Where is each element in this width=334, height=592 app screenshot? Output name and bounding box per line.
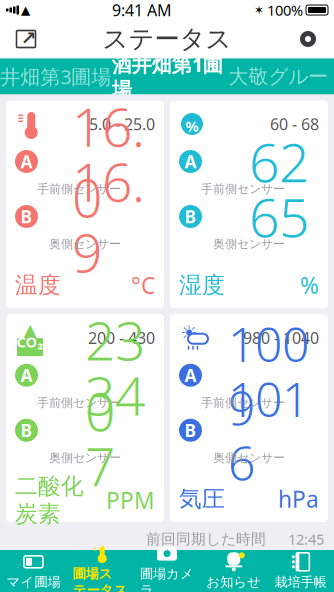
staticText: 温度	[15, 271, 61, 299]
staticText: 手前側センサー	[201, 182, 285, 196]
button[interactable]: 圃場カメラ	[134, 550, 200, 592]
staticText: 手前側センサー	[201, 395, 285, 410]
staticText: %	[185, 116, 198, 136]
staticText: 980 - 1040	[243, 327, 319, 348]
staticText: 奥側センサー	[49, 450, 121, 465]
staticText: %	[300, 270, 319, 300]
staticText: 栽培手帳	[275, 574, 327, 590]
staticText: お知らせ	[206, 574, 261, 590]
staticText: ↗	[20, 27, 36, 49]
button[interactable]: マイ圃場	[0, 550, 67, 592]
staticText: 二酸化炭素	[15, 472, 84, 528]
staticText: ▲	[185, 109, 199, 131]
staticText: B	[184, 419, 196, 442]
staticText: 62	[249, 126, 309, 197]
button[interactable]: 設定	[286, 20, 330, 58]
staticText: A	[184, 150, 196, 173]
staticText: °C	[131, 270, 155, 300]
staticText: 手前側センサー	[37, 395, 121, 410]
staticText: 100%	[267, 0, 303, 20]
staticText: 気圧	[179, 485, 225, 513]
staticText: 65	[249, 181, 309, 252]
staticText: 1016	[228, 366, 309, 494]
staticText: ▲	[22, 319, 37, 342]
staticText: CO₂	[16, 332, 43, 351]
staticText: PPM	[106, 485, 155, 515]
staticText: 大敬グルー	[228, 64, 328, 89]
staticText: 60 - 68	[270, 113, 319, 135]
staticText: 16.0	[72, 91, 145, 232]
button[interactable]: 圃場ステータス	[67, 550, 134, 592]
staticText: ▲	[21, 3, 30, 17]
button[interactable]: 井畑第3圃場	[0, 58, 111, 94]
staticText: 9:41 AM	[112, 0, 172, 21]
button[interactable]: 酒井畑第1圃場	[111, 58, 223, 94]
staticText: 前回同期した時間	[146, 530, 266, 548]
staticText: B	[20, 419, 32, 442]
staticText: 奥側センサー	[213, 450, 285, 465]
button[interactable]: 大敬グルー	[223, 58, 334, 94]
staticText: 230	[85, 304, 145, 446]
staticText: 井畑第3圃場	[0, 63, 111, 90]
staticText: 1009	[228, 311, 309, 439]
staticText: B	[184, 205, 196, 228]
staticText: 16.9	[72, 146, 145, 287]
staticText: 奥側センサー	[49, 237, 121, 251]
staticText: hPa	[278, 484, 319, 514]
staticText: ☀	[180, 321, 198, 344]
staticText: 圃場ステータス	[73, 566, 128, 592]
staticText: B	[20, 205, 32, 228]
staticText: 12:45	[288, 529, 324, 549]
staticText: マイ圃場	[6, 574, 60, 590]
staticText: 圃場カメラ	[140, 566, 194, 592]
staticText: ✶	[254, 3, 264, 17]
button[interactable]: お知らせ	[200, 550, 267, 592]
button[interactable]: グラフ	[4, 20, 48, 58]
staticText: A	[20, 364, 32, 387]
staticText: A	[184, 364, 196, 387]
staticText: 347	[85, 359, 145, 501]
staticText: 酒井畑第1圃場	[112, 51, 223, 102]
staticText: 200 - 430	[88, 327, 155, 348]
staticText: A	[20, 150, 32, 173]
staticText: 奥側センサー	[213, 237, 285, 251]
staticText: 5.0 - 25.0	[89, 113, 155, 135]
button[interactable]: 栽培手帳	[267, 550, 334, 592]
staticText: ステータス	[102, 23, 231, 54]
staticText: 手前側センサー	[37, 182, 121, 196]
staticText: 湿度	[179, 271, 225, 299]
